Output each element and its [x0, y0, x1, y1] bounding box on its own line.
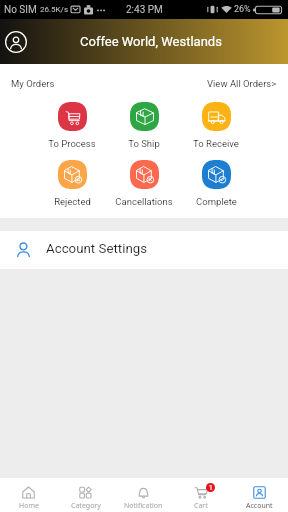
button[interactable]: Profile: [2, 28, 30, 56]
staticText: No SIM: [4, 4, 37, 16]
staticText: 2:43 PM: [126, 4, 163, 16]
staticText: Account Settings: [46, 241, 148, 257]
staticText: To Process: [48, 138, 96, 149]
staticText: Notification: [124, 501, 163, 511]
staticText: To Receive: [193, 138, 239, 149]
button[interactable]: Account: [230, 478, 288, 512]
button[interactable]: Account Settings: [0, 231, 288, 269]
button[interactable]: Cancellations: [108, 160, 180, 207]
button[interactable]: To Process: [36, 102, 108, 149]
staticText: Coffee World, Westlands: [80, 34, 222, 49]
button[interactable]: Home: [0, 478, 57, 512]
button[interactable]: To Ship: [108, 102, 180, 149]
button[interactable]: Complete: [180, 160, 252, 207]
staticText: Cancellations: [115, 196, 173, 207]
staticText: 1: [209, 484, 213, 492]
staticText: View All Orders>: [207, 78, 277, 89]
staticText: Home: [19, 501, 39, 511]
button[interactable]: Notification: [114, 478, 172, 512]
button[interactable]: View All Orders>: [207, 78, 277, 89]
staticText: Category: [71, 501, 101, 511]
staticText: My Orders: [11, 78, 55, 89]
staticText: Rejected: [54, 196, 91, 207]
staticText: To Ship: [128, 138, 160, 149]
button[interactable]: Category: [57, 478, 114, 512]
staticText: 26%: [234, 4, 251, 15]
button[interactable]: Rejected: [36, 160, 108, 207]
button[interactable]: 1: [172, 478, 230, 512]
staticText: Complete: [196, 196, 237, 207]
staticText: 26.5K/s: [40, 5, 69, 14]
button[interactable]: To Receive: [180, 102, 252, 149]
staticText: Cart: [194, 501, 208, 511]
staticText: Account: [246, 501, 273, 511]
